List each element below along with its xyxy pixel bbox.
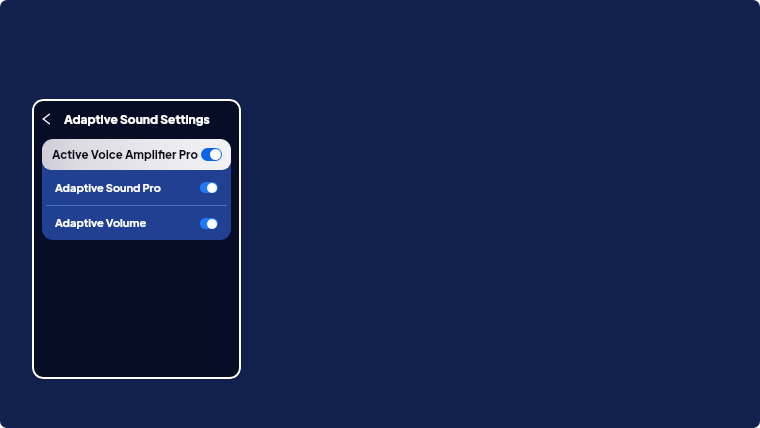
- button[interactable]: Back: [35, 108, 57, 130]
- staticText: Adaptive Volume: [55, 216, 147, 230]
- button[interactable]: Toggle on: [200, 218, 218, 229]
- button[interactable]: Adaptive Sound Pro: [42, 170, 231, 205]
- button[interactable]: Toggle on: [200, 182, 218, 193]
- staticText: Adaptive Sound Pro: [55, 181, 161, 195]
- button[interactable]: Toggle on: [201, 148, 222, 161]
- button[interactable]: Active Voice Amplifier Pro: [42, 139, 231, 170]
- staticText: Adaptive Sound Settings: [64, 112, 210, 127]
- button[interactable]: Adaptive Volume: [42, 206, 231, 240]
- staticText: Active Voice Amplifier Pro: [52, 147, 199, 161]
